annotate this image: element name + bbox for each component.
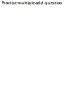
staticText: Practise multiple-add question bbox=[1, 0, 62, 5]
